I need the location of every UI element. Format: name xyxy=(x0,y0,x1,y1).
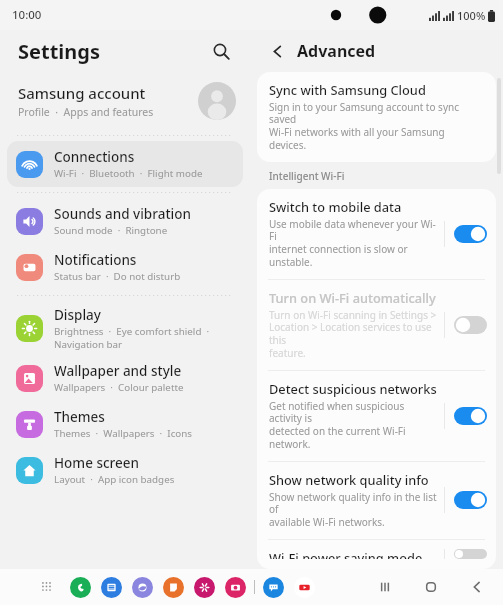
button[interactable]: Sounds and vibration xyxy=(7,198,243,244)
button[interactable]: Home xyxy=(419,575,443,599)
staticText: Connections xyxy=(54,148,135,166)
staticText: Intelligent Wi-Fi xyxy=(269,169,345,183)
staticText: Use mobile data whenever your Wi-Fi inte… xyxy=(269,217,438,269)
button[interactable]: Themes xyxy=(7,401,243,447)
button[interactable]: On xyxy=(454,407,487,425)
staticText: Brightness · Eye comfort shield · Naviga… xyxy=(54,325,210,351)
button[interactable]: Off xyxy=(454,549,487,559)
button[interactable]: On xyxy=(454,491,487,509)
button[interactable]: Turn on Wi-Fi automatically xyxy=(257,280,496,370)
button[interactable]: Switch to mobile data xyxy=(257,189,496,279)
staticText: Turn on Wi-Fi scanning in Settings > Loc… xyxy=(269,308,438,360)
button[interactable]: Wi-Fi power saving mode xyxy=(257,540,496,569)
staticText: Show network quality info in the list of… xyxy=(269,490,438,529)
button[interactable]: Wallpaper and style xyxy=(7,355,243,401)
button[interactable]: star xyxy=(194,577,215,598)
button[interactable]: Samsung account xyxy=(0,72,250,130)
staticText: Status bar · Do not disturb xyxy=(54,270,181,283)
staticText: Wallpaper and style xyxy=(54,362,182,380)
staticText: Notifications xyxy=(54,251,137,269)
staticText: Profile · Apps and features xyxy=(18,105,154,119)
staticText: Sign in to your Samsung account to sync … xyxy=(269,100,484,152)
staticText: Show network quality info xyxy=(269,471,429,488)
button[interactable]: Notifications xyxy=(7,244,243,290)
button[interactable]: Back xyxy=(465,575,489,599)
button[interactable]: Back xyxy=(264,38,290,64)
button[interactable]: Apps xyxy=(36,576,58,598)
button[interactable]: Connections xyxy=(7,141,243,187)
button[interactable]: chat xyxy=(263,577,284,598)
staticText: Sync with Samsung Cloud xyxy=(269,81,426,98)
staticText: Wi-Fi power saving mode xyxy=(269,549,423,559)
button[interactable]: net xyxy=(132,577,153,598)
button[interactable]: msg xyxy=(101,577,122,598)
staticText: Turn on Wi-Fi automatically xyxy=(269,289,436,306)
staticText: Sounds and vibration xyxy=(54,205,191,223)
button[interactable]: Detect suspicious networks xyxy=(257,371,496,461)
button[interactable]: Off xyxy=(454,316,487,334)
button[interactable]: On xyxy=(454,225,487,243)
staticText: Samsung account xyxy=(18,83,146,103)
staticText: Layout · App icon badges xyxy=(54,473,175,486)
button[interactable]: Sync with Samsung Cloud xyxy=(257,72,496,162)
button[interactable]: yt xyxy=(294,577,315,598)
button[interactable]: note xyxy=(163,577,184,598)
staticText: Display xyxy=(54,306,101,324)
button[interactable]: Home screen xyxy=(7,447,243,493)
staticText: 10:00 xyxy=(12,7,42,23)
staticText: Themes · Wallpapers · Icons xyxy=(54,427,193,440)
button[interactable]: cam xyxy=(225,577,246,598)
staticText: Themes xyxy=(54,408,105,426)
button[interactable]: Display xyxy=(7,301,243,355)
staticText: Detect suspicious networks xyxy=(269,380,437,397)
staticText: Wi-Fi · Bluetooth · Flight mode xyxy=(54,167,203,180)
button[interactable]: Search xyxy=(206,36,236,66)
staticText: Advanced xyxy=(297,40,376,62)
staticText: Wallpapers · Colour palette xyxy=(54,381,184,394)
staticText: Sound mode · Ringtone xyxy=(54,224,168,237)
button[interactable]: Show network quality info xyxy=(257,462,496,539)
staticText: Home screen xyxy=(54,454,139,472)
staticText: Settings xyxy=(18,38,100,65)
staticText: 100% xyxy=(457,8,486,23)
staticText: Switch to mobile data xyxy=(269,198,402,215)
button[interactable]: phone xyxy=(70,577,91,598)
staticText: Get notified when suspicious activity is… xyxy=(269,399,438,451)
button[interactable]: Recents xyxy=(373,575,397,599)
